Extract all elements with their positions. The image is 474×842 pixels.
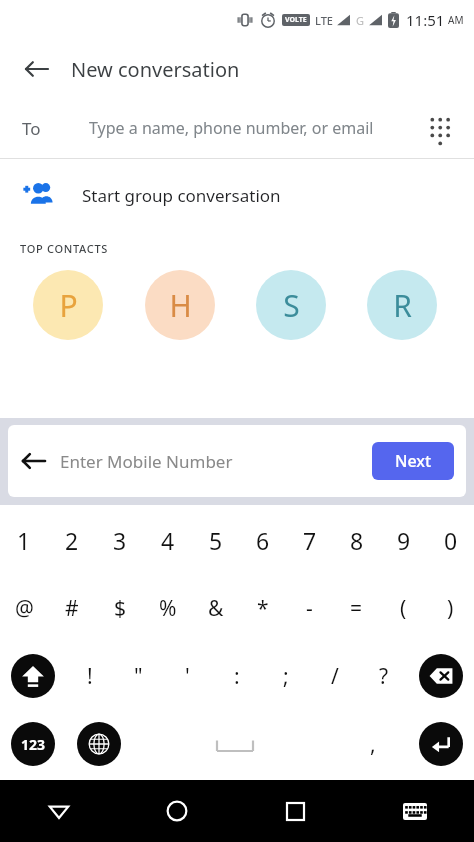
button[interactable]: $ bbox=[96, 585, 144, 631]
staticText: 6 bbox=[256, 525, 270, 556]
staticText: Next bbox=[395, 450, 432, 472]
staticText: R bbox=[393, 285, 412, 326]
button[interactable]: 5 bbox=[192, 517, 239, 563]
staticText: 8 bbox=[350, 525, 364, 556]
button[interactable]: 2 bbox=[48, 517, 96, 563]
staticText: % bbox=[159, 594, 177, 623]
button[interactable]: 1 bbox=[0, 517, 48, 563]
staticText: 5 bbox=[209, 525, 223, 556]
staticText: ( bbox=[400, 594, 407, 623]
staticText: 1 bbox=[17, 525, 31, 556]
button[interactable]: 0 bbox=[427, 517, 474, 563]
button[interactable]: S bbox=[256, 270, 326, 340]
staticText: H bbox=[169, 285, 192, 326]
button[interactable]: ' bbox=[163, 651, 212, 701]
button[interactable]: Numbers bbox=[0, 719, 66, 769]
button[interactable]: Dialpad bbox=[418, 106, 462, 150]
button[interactable]: : bbox=[212, 651, 261, 701]
button[interactable]: ? bbox=[359, 651, 408, 701]
button[interactable]: Recent apps bbox=[236, 780, 355, 842]
button[interactable]: @ bbox=[0, 585, 48, 631]
staticText: 7 bbox=[303, 525, 317, 556]
button[interactable]: ) bbox=[427, 585, 474, 631]
button[interactable]: " bbox=[114, 651, 163, 701]
button[interactable]: & bbox=[192, 585, 239, 631]
button[interactable]: Back bbox=[0, 780, 118, 842]
staticText: Enter Mobile Number bbox=[60, 450, 372, 473]
staticText: LTE bbox=[315, 13, 333, 28]
button[interactable]: = bbox=[333, 585, 380, 631]
button[interactable]: ! bbox=[66, 651, 114, 701]
button[interactable]: Shift bbox=[0, 651, 66, 701]
button[interactable]: H bbox=[145, 270, 215, 340]
button[interactable]: Space bbox=[132, 719, 338, 769]
button[interactable]: 7 bbox=[286, 517, 333, 563]
button[interactable]: Next bbox=[372, 442, 454, 480]
staticText: $ bbox=[114, 594, 127, 623]
button[interactable]: 3 bbox=[96, 517, 144, 563]
staticText: , bbox=[370, 730, 376, 759]
button[interactable]: Change language bbox=[66, 719, 132, 769]
staticText: P bbox=[59, 285, 78, 326]
button[interactable]: Back bbox=[8, 435, 60, 487]
button[interactable]: To bbox=[0, 98, 474, 158]
button[interactable]: / bbox=[310, 651, 359, 701]
button[interactable]: Enter bbox=[408, 719, 474, 769]
button[interactable]: 6 bbox=[239, 517, 286, 563]
staticText: - bbox=[306, 594, 313, 623]
staticText: 123 bbox=[21, 735, 46, 754]
button[interactable]: R bbox=[367, 270, 437, 340]
staticText: ; bbox=[283, 662, 289, 691]
staticText: : bbox=[234, 662, 240, 691]
button[interactable]: - bbox=[286, 585, 333, 631]
staticText: To bbox=[22, 117, 41, 140]
button[interactable]: Backspace bbox=[408, 651, 474, 701]
button[interactable]: P bbox=[33, 270, 103, 340]
staticText: 0 bbox=[444, 525, 458, 556]
staticText: 9 bbox=[397, 525, 411, 556]
staticText: Start group conversation bbox=[82, 184, 281, 207]
button[interactable]: Keyboard bbox=[355, 780, 474, 842]
staticText: New conversation bbox=[71, 56, 240, 83]
staticText: @ bbox=[15, 594, 34, 623]
staticText: S bbox=[283, 285, 300, 326]
staticText: ! bbox=[87, 662, 93, 691]
staticText: G bbox=[356, 13, 365, 28]
staticText: = bbox=[350, 594, 363, 623]
button[interactable]: Home bbox=[118, 780, 236, 842]
button[interactable]: ; bbox=[261, 651, 310, 701]
staticText: TOP CONTACTS bbox=[20, 241, 109, 256]
staticText: AM bbox=[448, 13, 464, 27]
button[interactable]: * bbox=[239, 585, 286, 631]
staticText: * bbox=[257, 594, 269, 623]
staticText: 3 bbox=[113, 525, 127, 556]
button[interactable]: 8 bbox=[333, 517, 380, 563]
staticText: ' bbox=[185, 662, 190, 691]
staticText: 4 bbox=[161, 525, 175, 556]
button[interactable]: % bbox=[144, 585, 192, 631]
staticText: 11:51 bbox=[406, 10, 445, 30]
staticText: ? bbox=[379, 662, 389, 691]
staticText: # bbox=[65, 594, 79, 623]
button[interactable]: , bbox=[338, 719, 408, 769]
button[interactable]: Navigate up bbox=[13, 45, 61, 93]
button[interactable]: ( bbox=[380, 585, 427, 631]
staticText: / bbox=[331, 662, 339, 691]
button[interactable]: Start group conversation bbox=[0, 159, 474, 231]
staticText: Type a name, phone number, or email bbox=[89, 117, 374, 139]
staticText: ) bbox=[447, 594, 454, 623]
staticText: VOLTE bbox=[285, 15, 307, 25]
button[interactable]: 9 bbox=[380, 517, 427, 563]
staticText: & bbox=[208, 594, 224, 623]
button[interactable]: 4 bbox=[144, 517, 192, 563]
staticText: 2 bbox=[65, 525, 79, 556]
button[interactable]: # bbox=[48, 585, 96, 631]
staticText: " bbox=[134, 662, 143, 691]
